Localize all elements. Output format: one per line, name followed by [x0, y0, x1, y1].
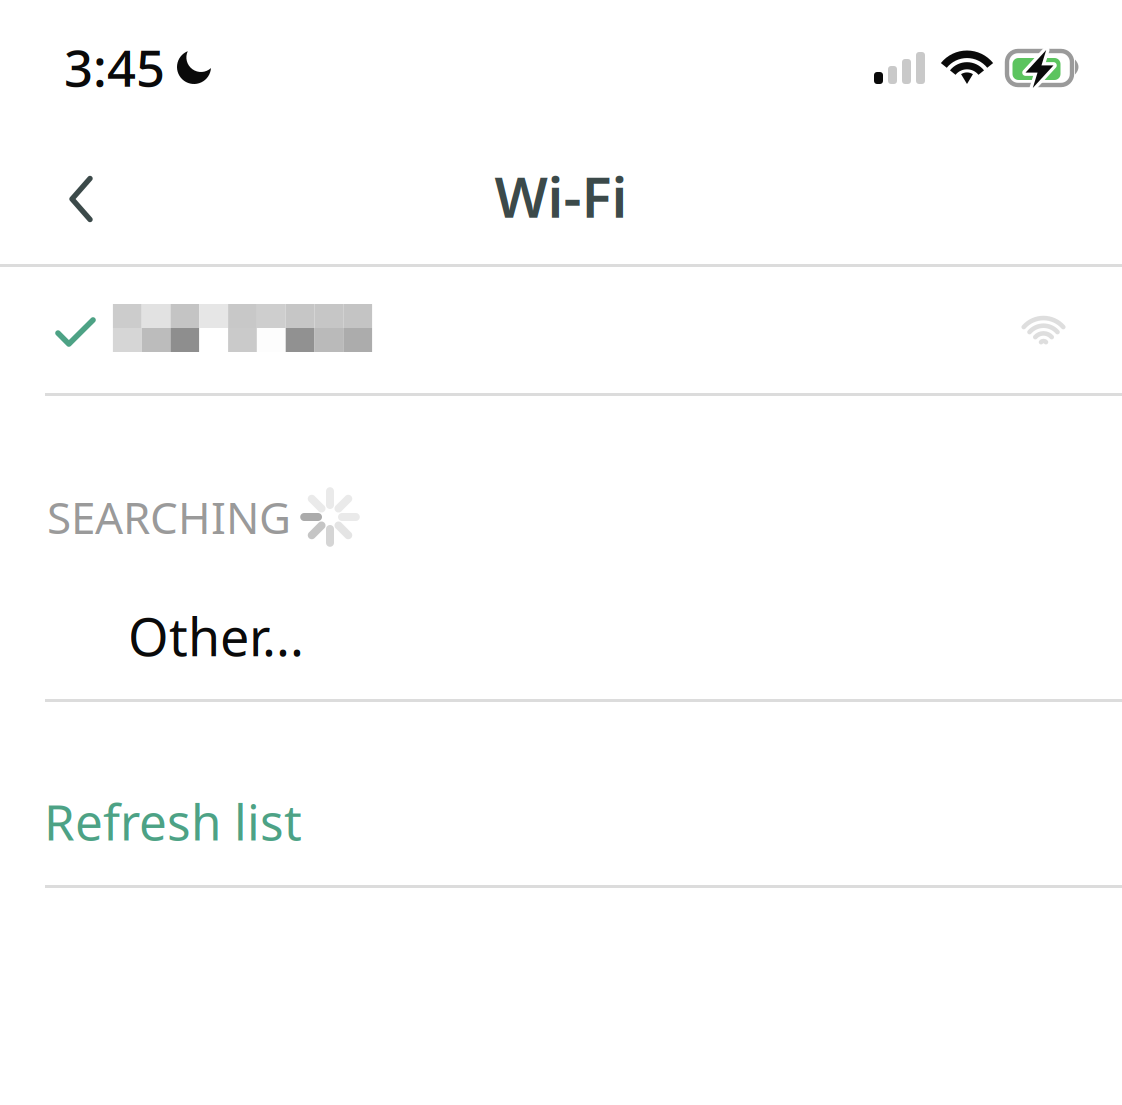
staticText: 3:45 [64, 33, 165, 101]
staticText: Wi-Fi [494, 159, 627, 233]
button[interactable]: Other... [0, 573, 1122, 702]
button[interactable]: Refresh list [0, 702, 1122, 888]
staticText: Refresh list [44, 788, 302, 854]
staticText: Other... [128, 601, 304, 671]
button[interactable] [0, 267, 1122, 396]
staticText: SEARCHING [47, 488, 291, 546]
button[interactable]: Back [0, 150, 130, 247]
